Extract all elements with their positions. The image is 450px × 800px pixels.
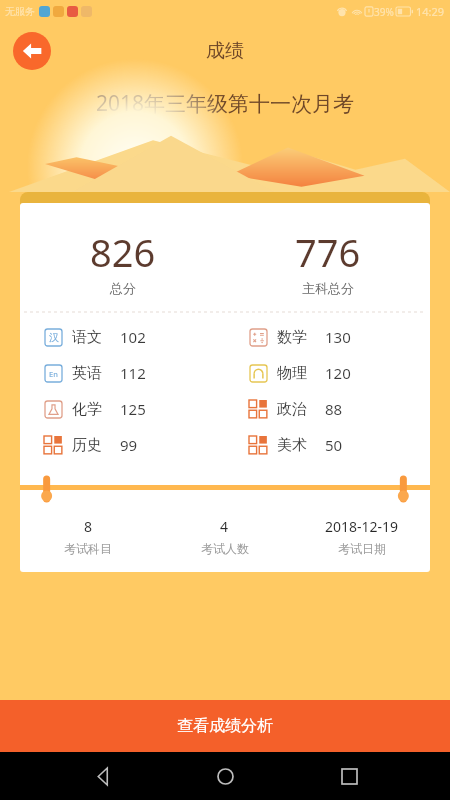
staticText: 美术 <box>277 436 307 455</box>
staticText: 英语 <box>72 364 102 383</box>
staticText: 8 <box>84 517 93 536</box>
staticText: 130 <box>325 327 351 347</box>
staticText: 14:29 <box>416 4 445 19</box>
button[interactable]: 化学 <box>44 391 225 427</box>
staticText: 查看成绩分析 <box>177 716 273 736</box>
staticText: 102 <box>120 327 146 347</box>
staticText: 政治 <box>277 400 307 419</box>
button[interactable]: En <box>44 355 225 391</box>
staticText: 125 <box>120 399 146 419</box>
staticText: 化学 <box>72 400 102 419</box>
staticText: 数学 <box>277 328 307 347</box>
staticText: 考试日期 <box>338 541 386 556</box>
button[interactable]: 查看成绩分析 <box>0 700 450 752</box>
staticText: 汉 <box>49 331 59 344</box>
button[interactable]: 数学 <box>249 319 430 355</box>
button[interactable]: 政治 <box>249 391 430 427</box>
staticText: 考试科目 <box>64 541 112 556</box>
staticText: 物理 <box>277 364 307 383</box>
staticText: 826 <box>90 226 156 278</box>
button[interactable]: Recents <box>327 754 371 798</box>
button[interactable]: 美术 <box>249 427 430 463</box>
staticText: 120 <box>325 363 351 383</box>
button[interactable]: 汉 <box>44 319 225 355</box>
staticText: 2018年三年级第十一次月考 <box>0 89 450 118</box>
staticText: 总分 <box>110 280 136 296</box>
staticText: 主科总分 <box>302 280 354 296</box>
staticText: En <box>49 369 58 379</box>
staticText: 88 <box>325 399 343 419</box>
staticText: 4 <box>220 517 229 536</box>
staticText: 历史 <box>72 436 102 455</box>
staticText: 776 <box>295 226 361 278</box>
button[interactable]: Home <box>203 754 247 798</box>
button[interactable]: 物理 <box>249 355 430 391</box>
button[interactable]: Back <box>13 32 51 70</box>
staticText: 成绩 <box>206 39 244 63</box>
staticText: 112 <box>120 363 146 383</box>
staticText: 考试人数 <box>201 541 249 556</box>
button[interactable]: 历史 <box>44 427 225 463</box>
staticText: 语文 <box>72 328 102 347</box>
staticText: 无服务 <box>5 5 35 18</box>
staticText: 50 <box>325 435 343 455</box>
button[interactable]: Back <box>80 754 124 798</box>
staticText: 2018-12-19 <box>325 517 399 536</box>
staticText: 99 <box>120 435 138 455</box>
staticText: 39% <box>374 5 394 19</box>
